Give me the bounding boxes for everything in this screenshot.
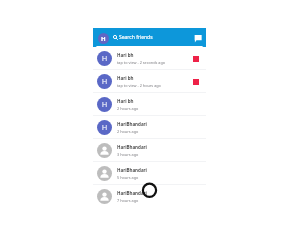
staticText: HariBhandari bbox=[117, 190, 147, 196]
staticText: 5 hours ago bbox=[117, 175, 139, 180]
button[interactable]: H bbox=[93, 28, 206, 46]
staticText: Hari bh bbox=[117, 75, 134, 81]
button[interactable]: H bbox=[93, 93, 206, 116]
button[interactable]: H bbox=[93, 116, 206, 139]
staticText: H bbox=[102, 54, 108, 64]
staticText: H bbox=[102, 100, 108, 110]
staticText: H bbox=[102, 123, 108, 133]
staticText: H bbox=[102, 77, 108, 87]
staticText: 3 hours ago bbox=[117, 152, 139, 157]
button[interactable]: HariBhandari bbox=[93, 185, 206, 208]
staticText: tap to view - 2 hours ago bbox=[117, 83, 161, 88]
button[interactable]: H bbox=[93, 47, 206, 70]
button[interactable]: HariBhandari bbox=[93, 162, 206, 185]
staticText: 2 hours ago bbox=[117, 129, 139, 134]
staticText: Search friends bbox=[119, 34, 153, 41]
other: Messages bbox=[194, 34, 203, 43]
staticText: tap to view - 2 seconds ago bbox=[117, 60, 166, 65]
button[interactable]: HariBhandari bbox=[93, 139, 206, 162]
staticText: 7 hours ago bbox=[117, 198, 139, 203]
button[interactable]: H bbox=[93, 70, 206, 93]
staticText: 2 hours ago bbox=[117, 106, 139, 111]
staticText: Hari bh bbox=[117, 98, 134, 104]
staticText: Hari bh bbox=[117, 52, 134, 58]
staticText: HariBhandari bbox=[117, 121, 147, 127]
staticText: HariBhandari bbox=[117, 167, 147, 173]
staticText: H bbox=[101, 35, 106, 43]
staticText: HariBhandari bbox=[117, 144, 147, 150]
